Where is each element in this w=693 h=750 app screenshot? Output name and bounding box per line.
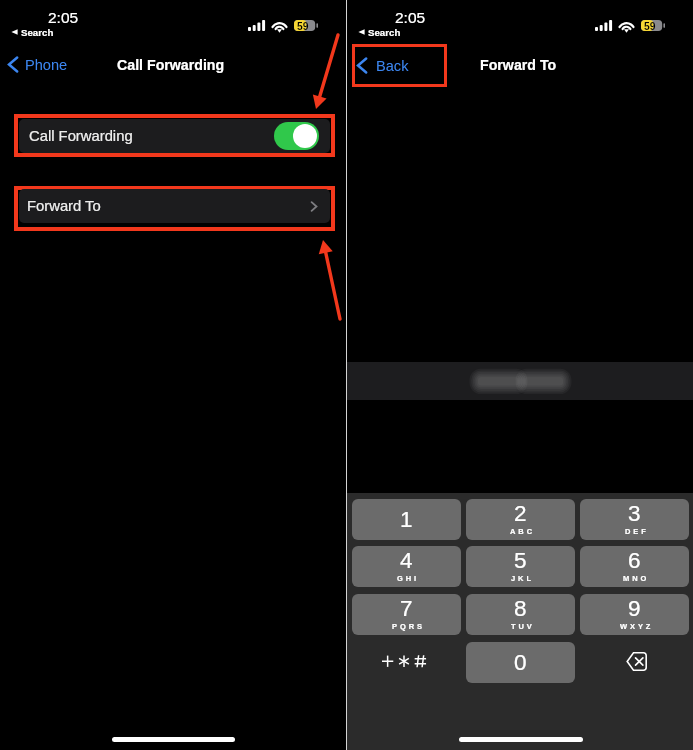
staticText: Call Forwarding (117, 57, 225, 73)
button[interactable]: 6 (580, 546, 689, 587)
staticText: 0 (514, 650, 527, 675)
staticText: 8 (514, 596, 527, 621)
button[interactable]: Call Forwarding toggle (274, 122, 319, 150)
staticText: 2 (514, 501, 527, 526)
staticText: JKL (511, 574, 534, 582)
staticText: Forward To (480, 57, 557, 73)
staticText: GHI (397, 574, 420, 582)
staticText: 3 (628, 501, 641, 526)
staticText: 6 (628, 548, 641, 573)
staticText: 1 (400, 507, 413, 532)
staticText: 2:05 (395, 9, 426, 26)
staticText: 7 (400, 596, 413, 621)
button[interactable]: Back to Phone (3, 52, 73, 77)
staticText: MNO (623, 574, 650, 582)
staticText: 2:05 (48, 9, 79, 26)
button[interactable]: 7 (352, 594, 461, 635)
staticText: 9 (628, 596, 641, 621)
staticText: Search (21, 27, 54, 38)
staticText: Call Forwarding (29, 128, 133, 145)
staticText: ABC (510, 527, 535, 535)
staticText: Forward To (27, 198, 101, 215)
staticText: 59 (297, 21, 309, 33)
button[interactable]: 1 (352, 499, 461, 540)
button[interactable]: 3 (580, 499, 689, 540)
staticText: Back (376, 58, 409, 74)
button[interactable]: 4 (352, 546, 461, 587)
button[interactable]: Backspace (580, 641, 688, 681)
button[interactable]: Back (355, 47, 444, 84)
button[interactable]: plus star pound (353, 641, 461, 681)
button[interactable]: 5 (466, 546, 575, 587)
button[interactable]: Call Forwarding (19, 119, 330, 153)
staticText: Search (368, 27, 401, 38)
button[interactable]: 9 (580, 594, 689, 635)
button[interactable]: 8 (466, 594, 575, 635)
staticText: PQRS (392, 622, 425, 630)
staticText: TUV (511, 622, 535, 630)
staticText: DEF (625, 527, 649, 535)
staticText: Phone (25, 57, 68, 73)
button[interactable]: 2 (466, 499, 575, 540)
staticText: 4 (400, 548, 413, 573)
staticText: WXYZ (620, 622, 654, 630)
staticText: 5 (514, 548, 527, 573)
button[interactable]: Forward To (19, 189, 330, 223)
staticText: 59 (644, 21, 656, 33)
button[interactable]: 0 (466, 642, 575, 683)
